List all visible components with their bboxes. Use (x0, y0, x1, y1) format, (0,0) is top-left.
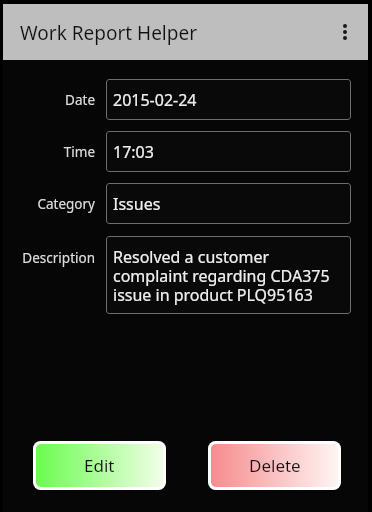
button[interactable]: Issues (106, 183, 351, 224)
button[interactable]: Delete (211, 444, 338, 487)
button[interactable]: 17:03 (106, 131, 351, 172)
button[interactable]: 2015-02-24 (106, 79, 351, 120)
staticText: Resolved a customer complaint regarding … (113, 246, 330, 306)
button[interactable]: Edit (36, 444, 163, 487)
staticText: 17:03 (113, 141, 154, 163)
button[interactable]: Work Report Helper (3, 4, 368, 60)
staticText: 2015-02-24 (113, 89, 197, 111)
staticText: Edit (84, 454, 115, 477)
staticText: Delete (249, 454, 301, 477)
staticText: Work Report Helper (20, 20, 198, 46)
staticText: Time (63, 143, 95, 161)
button[interactable]: Resolved a customer complaint regarding … (106, 236, 351, 314)
staticText: Description (22, 249, 95, 267)
staticText: Issues (113, 193, 161, 215)
staticText: Date (65, 91, 95, 109)
button[interactable]: More options (330, 17, 360, 47)
staticText: Category (37, 195, 95, 213)
